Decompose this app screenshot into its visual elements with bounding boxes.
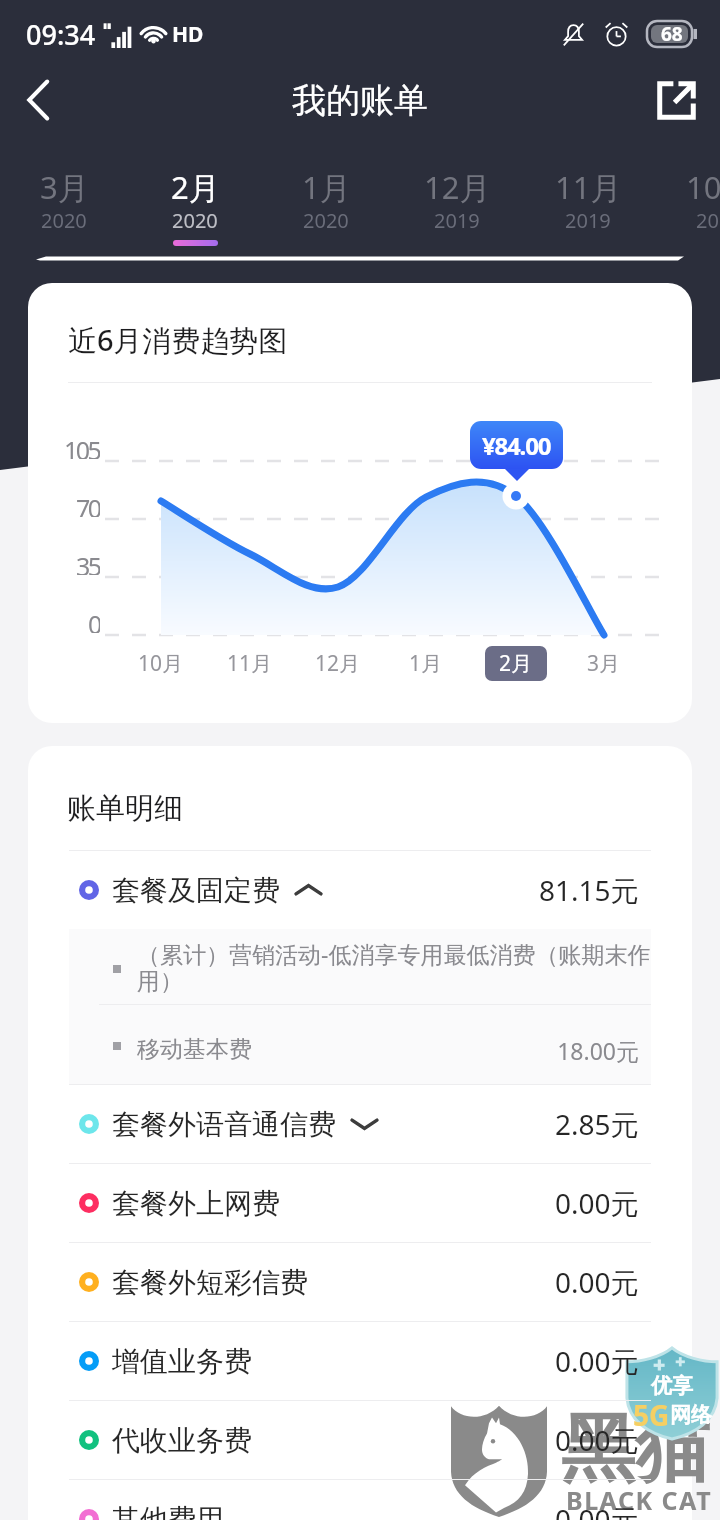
- staticText: 09:34: [26, 16, 96, 53]
- staticText: 代收业务费: [112, 1423, 252, 1458]
- staticText: （累计）营销活动-低消享专用最低消费（账期末作用）: [137, 938, 659, 996]
- button[interactable]: 10月: [654, 150, 720, 255]
- staticText: 移动基本费: [137, 1035, 252, 1064]
- staticText: 0.00元: [555, 1500, 639, 1520]
- staticText: 账单明细: [67, 790, 183, 827]
- staticText: 2019: [565, 207, 611, 234]
- staticText: 套餐外语音通信费: [112, 1107, 336, 1142]
- button[interactable]: 1月: [261, 150, 391, 255]
- staticText: 70: [76, 491, 100, 517]
- staticText: 增值业务费: [112, 1344, 252, 1379]
- button[interactable]: 套餐外短彩信费: [28, 1243, 692, 1321]
- button[interactable]: 增值业务费: [28, 1322, 692, 1400]
- staticText: 0.00元: [555, 1342, 639, 1380]
- staticText: 0.00元: [555, 1263, 639, 1301]
- button[interactable]: Share: [644, 68, 708, 132]
- staticText: 5G: [633, 1396, 670, 1434]
- staticText: 12月: [315, 649, 361, 678]
- staticText: 2019: [696, 207, 720, 234]
- staticText: 黑猫: [561, 1403, 709, 1496]
- staticText: 2月: [499, 649, 533, 678]
- staticText: 18.00元: [69, 1035, 639, 1066]
- button[interactable]: 11月: [523, 150, 653, 255]
- staticText: 2019: [434, 207, 480, 234]
- staticText: 68: [661, 21, 683, 47]
- staticText: 优享: [651, 1373, 693, 1399]
- staticText: 套餐外短彩信费: [112, 1265, 308, 1300]
- staticText: 1月: [409, 649, 443, 678]
- button[interactable]: 套餐及固定费: [28, 851, 692, 929]
- staticText: 我的账单: [292, 79, 428, 122]
- staticText: BLACK CAT: [566, 1483, 713, 1517]
- staticText: 2020: [303, 207, 349, 234]
- button[interactable]: 12月: [392, 150, 522, 255]
- staticText: 1月: [302, 166, 351, 208]
- staticText: 12月: [424, 166, 491, 208]
- staticText: 网络: [670, 1402, 712, 1428]
- staticText: ¥84.00: [482, 429, 551, 462]
- button[interactable]: 代收业务费: [28, 1401, 692, 1479]
- staticText: 2.85元: [555, 1105, 639, 1143]
- staticText: 0.00元: [555, 1421, 639, 1459]
- staticText: 35: [76, 549, 100, 575]
- staticText: 81.15元: [539, 871, 639, 909]
- staticText: 10月: [686, 166, 720, 208]
- staticText: 10月: [138, 649, 184, 678]
- staticText: HD: [172, 20, 204, 49]
- staticText: 11月: [555, 166, 622, 208]
- button[interactable]: 其他费用: [28, 1480, 692, 1520]
- staticText: 3月: [587, 649, 621, 678]
- staticText: 105: [64, 433, 100, 459]
- staticText: 2020: [172, 207, 218, 234]
- staticText: 套餐及固定费: [112, 873, 280, 908]
- staticText: 0: [88, 607, 100, 633]
- staticText: 套餐外上网费: [112, 1186, 280, 1221]
- button[interactable]: 2月: [130, 150, 260, 255]
- staticText: 11月: [227, 649, 273, 678]
- staticText: 其他费用: [112, 1502, 224, 1520]
- staticText: 0.00元: [555, 1184, 639, 1222]
- button[interactable]: Back: [6, 68, 70, 132]
- staticText: 3月: [40, 166, 89, 208]
- staticText: 2月: [171, 166, 220, 208]
- staticText: 近6月消费趋势图: [68, 320, 288, 360]
- button[interactable]: 套餐外上网费: [28, 1164, 692, 1242]
- button[interactable]: 3月: [0, 150, 129, 255]
- button[interactable]: 套餐外语音通信费: [28, 1085, 692, 1163]
- staticText: 2020: [41, 207, 87, 234]
